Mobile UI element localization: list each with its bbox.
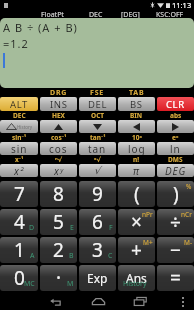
staticText: sin [11,142,28,155]
staticText: 7 [14,181,25,207]
button[interactable]: 6 [79,209,116,235]
staticText: tan⁻¹ [90,133,106,142]
button[interactable]: log [118,142,155,155]
staticText: · [56,265,62,291]
staticText: TAB [129,88,145,97]
staticText: DRG [50,88,68,97]
button[interactable]: 3 [79,237,116,263]
staticText: BS [130,98,143,111]
staticText: n! [133,155,140,164]
button[interactable]: Down [79,120,116,133]
button[interactable]: 1 [0,237,38,263]
staticText: = [170,265,181,291]
button[interactable]: History [0,120,38,133]
button[interactable]: + [118,237,155,263]
staticText: INS [50,98,68,111]
staticText: 1 [14,237,25,263]
button[interactable]: ÷ [157,209,194,235]
staticText: History [123,279,147,289]
button[interactable]: sin [0,142,38,155]
staticText: A B ÷ (A + B) [3,20,78,35]
button[interactable]: x² [0,164,38,177]
staticText: nCr [181,210,192,219]
staticText: xʸ [54,164,64,177]
staticText: DMS [168,155,183,164]
button[interactable]: × [118,209,155,235]
button[interactable]: DEG [157,164,194,177]
staticText: × [131,209,142,235]
staticText: ÷ [170,209,181,235]
staticText: x⁻¹ [15,155,24,164]
button[interactable]: 4 [0,209,38,235]
staticText: Ans [126,270,147,286]
staticText: History [17,124,33,130]
staticText: x² [14,164,25,177]
staticText: eˣ [172,133,179,142]
staticText: ln [170,142,181,155]
button[interactable]: Right [157,120,194,133]
button[interactable]: Recent apps [125,293,155,310]
button[interactable]: π [118,164,155,177]
staticText: ) [173,181,179,207]
staticText: =1.2 [3,36,29,51]
button[interactable]: DEL [79,97,116,111]
button[interactable]: INS [40,97,77,111]
staticText: F [109,223,113,233]
button[interactable]: ALT [0,97,38,111]
staticText: ˣ√ [94,155,101,164]
staticText: % [186,182,192,191]
staticText: M+ [143,238,153,247]
button[interactable]: Back [41,293,71,310]
staticText: DEL [88,98,107,111]
staticText: C [108,251,113,261]
button[interactable]: · [40,265,77,291]
button[interactable]: 5 [40,209,77,235]
staticText: cos [49,142,68,155]
button[interactable]: √ [79,164,116,177]
button[interactable]: tan [79,142,116,155]
staticText: CLR [166,98,185,111]
button[interactable]: Home [83,293,113,310]
staticText: OCT [91,111,105,120]
staticText: − [170,237,181,263]
button[interactable]: CLR [157,97,194,111]
staticText: 4 [14,209,25,235]
button[interactable]: A B ÷ (A + B) [0,18,194,88]
staticText: cos⁻¹ [51,133,67,142]
button[interactable]: − [157,237,194,263]
button[interactable]: 9 [79,181,116,207]
button[interactable]: Up [40,120,77,133]
staticText: FloatPt [41,10,64,18]
button[interactable]: Ans [118,265,155,291]
button[interactable]: 7 [0,181,38,207]
button[interactable]: 8 [40,181,77,207]
staticText: 6 [92,209,103,235]
staticText: FSE [90,88,105,97]
staticText: 9 [92,181,103,207]
staticText: D [29,223,35,233]
button[interactable]: ) [157,181,194,207]
staticText: nPr [142,210,153,219]
button[interactable]: cos [40,142,77,155]
staticText: ( [134,181,140,207]
button[interactable]: ( [118,181,155,207]
staticText: log [128,142,146,155]
button[interactable]: 2 [40,237,77,263]
staticText: tan [88,142,107,155]
staticText: Exp [87,270,108,286]
staticText: √ [94,165,102,177]
staticText: 8 [53,181,64,207]
button[interactable]: Exp [79,265,116,291]
button[interactable]: = [157,265,194,291]
button[interactable]: More options [175,293,191,310]
staticText: 10ˣ [132,133,142,142]
staticText: DEG [165,164,187,177]
staticText: 3 [92,237,103,263]
button[interactable]: xʸ [40,164,77,177]
button[interactable]: 0 [0,265,38,291]
staticText: 5 [53,209,64,235]
button[interactable]: ln [157,142,194,155]
button[interactable]: BS [118,97,155,111]
staticText: ⁿ√ [55,155,63,164]
button[interactable]: Left [118,120,155,133]
